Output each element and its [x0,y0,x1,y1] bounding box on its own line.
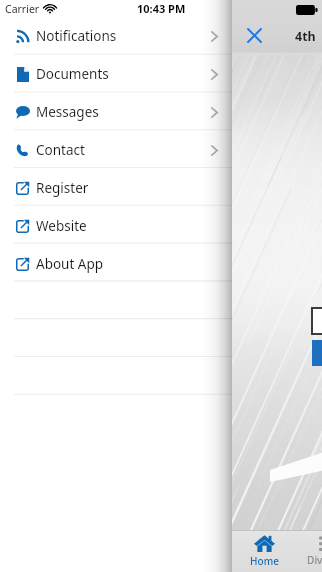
button[interactable]: Register [0,169,232,207]
button[interactable]: Documents [0,55,232,93]
staticText: 4th App [295,28,322,45]
button[interactable]: Website [0,207,232,245]
staticText: Contact [36,141,85,159]
staticText: Home [250,554,279,568]
staticText: Messages [36,103,99,121]
staticText: Notifications [36,27,117,45]
staticText: Documents [36,65,109,83]
staticText: Website [36,217,87,235]
staticText: Register [36,179,89,197]
button[interactable]: Messages [0,93,232,131]
button[interactable]: Close menu [243,24,265,46]
staticText: Divisions [307,553,322,567]
staticText: 10:43 PM [137,1,186,16]
button[interactable]: Divisions [296,530,322,572]
button[interactable]: Home [232,530,296,572]
button[interactable]: About App [0,245,232,283]
staticText: Carrier [5,2,40,16]
staticText: About App [36,255,104,273]
button[interactable]: Notifications [0,17,232,55]
button[interactable]: Contact [0,131,232,169]
